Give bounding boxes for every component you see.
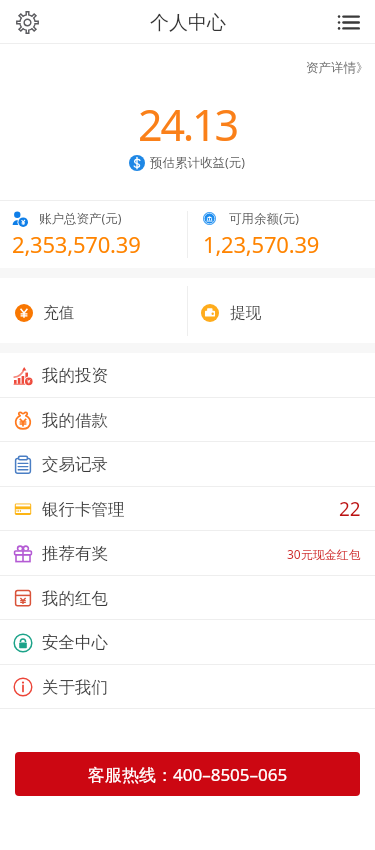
button[interactable]: 我的投资 <box>0 353 375 398</box>
button[interactable]: 安全中心 <box>0 620 375 665</box>
staticText: 安全中心 <box>42 632 108 653</box>
button[interactable]: 客服热线：400–8505–065 <box>15 752 360 796</box>
staticText: 24.13 <box>138 95 237 154</box>
button[interactable]: Menu <box>331 5 365 39</box>
button[interactable]: 账户总资产(元) <box>0 201 187 268</box>
staticText: 22 <box>339 496 361 522</box>
button[interactable]: 交易记录 <box>0 442 375 487</box>
button[interactable]: 可用余额(元) <box>188 201 375 268</box>
staticText: 个人中心 <box>150 11 226 35</box>
staticText: 提现 <box>230 303 261 323</box>
button[interactable]: 资产详情》 <box>306 60 375 76</box>
staticText: 交易记录 <box>42 454 108 475</box>
staticText: 银行卡管理 <box>42 499 125 520</box>
staticText: 我的借款 <box>42 410 108 431</box>
staticText: 我的投资 <box>42 365 108 386</box>
button[interactable]: 推荐有奖 <box>0 531 375 576</box>
button[interactable]: Settings <box>10 5 44 39</box>
staticText: 可用余额(元) <box>229 210 300 227</box>
button[interactable]: 银行卡管理 <box>0 487 375 531</box>
staticText: 账户总资产(元) <box>39 210 122 227</box>
button[interactable]: 充值 <box>0 278 187 343</box>
button[interactable]: 提现 <box>188 278 375 343</box>
staticText: 1,23,570.39 <box>203 229 320 259</box>
staticText: 充值 <box>43 303 74 323</box>
staticText: 30元现金红包 <box>287 546 361 562</box>
staticText: 客服热线：400–8505–065 <box>88 763 288 786</box>
staticText: 推荐有奖 <box>42 543 108 564</box>
staticText: 关于我们 <box>42 677 108 698</box>
button[interactable]: 关于我们 <box>0 665 375 709</box>
staticText: 2,353,570.39 <box>12 229 141 259</box>
button[interactable]: 我的借款 <box>0 398 375 442</box>
button[interactable]: 我的红包 <box>0 576 375 620</box>
staticText: 预估累计收益(元) <box>150 154 246 171</box>
staticText: 我的红包 <box>42 588 108 609</box>
